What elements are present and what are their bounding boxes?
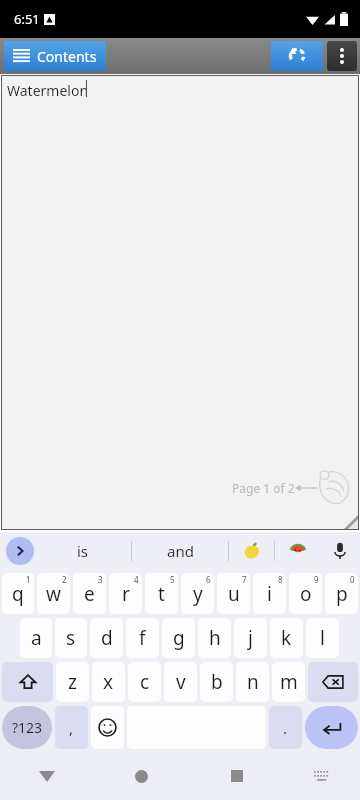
staticText: 4 [134, 574, 139, 585]
button[interactable]: z [56, 662, 89, 702]
button[interactable]: o [289, 573, 322, 614]
staticText: t [158, 581, 165, 607]
staticText: is [77, 541, 89, 561]
staticText: g [173, 625, 185, 651]
staticText: k [281, 625, 292, 651]
staticText: x [103, 669, 114, 695]
staticText: Watermelon [7, 81, 89, 100]
staticText: 6:51 [14, 10, 40, 28]
button[interactable]: j [234, 618, 267, 658]
button[interactable]: , [55, 706, 88, 749]
button[interactable]: f [126, 618, 159, 658]
button[interactable]: c [128, 662, 161, 702]
staticText: d [101, 625, 113, 651]
staticText: n [247, 669, 259, 695]
staticText: . [283, 718, 288, 738]
staticText: r [122, 581, 130, 607]
staticText: z [68, 669, 77, 695]
staticText: 3 [98, 574, 103, 585]
button[interactable]: Enter [305, 706, 358, 749]
staticText: e [84, 581, 95, 607]
staticText: 1 [26, 574, 31, 585]
staticText: 9 [314, 574, 319, 585]
staticText: Page 1 of 2 [232, 480, 295, 496]
button[interactable]: k [270, 618, 303, 658]
staticText: w [46, 581, 61, 607]
button[interactable]: a [20, 618, 52, 658]
button[interactable]: Voice input [320, 532, 360, 570]
staticText: u [228, 581, 240, 607]
staticText: h [209, 625, 221, 651]
button[interactable]: Keyboard switch [284, 752, 360, 800]
staticText: o [300, 581, 312, 607]
button[interactable]: h [198, 618, 231, 658]
button[interactable]: Recents [189, 752, 284, 800]
staticText: 6 [206, 574, 211, 585]
button[interactable]: Refresh [271, 41, 323, 71]
staticText: c [140, 669, 150, 695]
button[interactable]: u [217, 573, 250, 614]
button[interactable]: i [253, 573, 286, 614]
button[interactable]: Shift [2, 662, 53, 702]
button[interactable]: Lemon emoji [229, 532, 274, 570]
button[interactable]: Watermelon [1, 75, 359, 530]
staticText: i [267, 581, 272, 607]
button[interactable]: x [92, 662, 125, 702]
staticText: l [320, 625, 325, 651]
button[interactable]: g [162, 618, 195, 658]
button[interactable]: More options [327, 41, 357, 71]
staticText: b [211, 669, 223, 695]
staticText: 7 [242, 574, 247, 585]
button[interactable]: w [37, 573, 70, 614]
staticText: a [31, 625, 42, 651]
button[interactable]: . [269, 706, 302, 749]
staticText: 2 [62, 574, 67, 585]
staticText: j [248, 625, 253, 651]
staticText: 8 [278, 574, 283, 585]
button[interactable]: and [132, 532, 228, 570]
staticText: 5 [170, 574, 175, 585]
button[interactable]: q [2, 573, 34, 614]
staticText: f [139, 625, 146, 651]
staticText: s [66, 625, 76, 651]
button[interactable]: s [55, 618, 87, 658]
staticText: ?123 [12, 718, 43, 737]
button[interactable]: Home [94, 752, 189, 800]
staticText: v [176, 669, 186, 695]
button[interactable]: Contents [4, 41, 106, 71]
button[interactable]: is [34, 532, 131, 570]
staticText: q [12, 581, 24, 607]
button[interactable]: Expand suggestions [6, 537, 34, 565]
staticText: and [167, 541, 194, 561]
staticText: Contents [37, 47, 97, 66]
button[interactable]: y [181, 573, 214, 614]
staticText: y [193, 581, 203, 607]
button[interactable]: v [164, 662, 197, 702]
button[interactable]: Backspace [308, 662, 358, 702]
button[interactable]: e [73, 573, 106, 614]
button[interactable]: n [236, 662, 269, 702]
button[interactable]: b [200, 662, 233, 702]
button[interactable]: l [306, 618, 339, 658]
button[interactable]: Watermelon emoji [275, 532, 320, 570]
button[interactable]: p [325, 573, 358, 614]
button[interactable]: r [109, 573, 142, 614]
staticText: p [336, 581, 348, 607]
staticText: m [280, 669, 298, 695]
button[interactable]: ?123 [2, 706, 52, 749]
button[interactable]: t [145, 573, 178, 614]
button[interactable]: d [90, 618, 123, 658]
button[interactable]: m [272, 662, 305, 702]
button[interactable]: Back [0, 752, 94, 800]
button[interactable]: Emoji [91, 706, 124, 749]
staticText: 0 [350, 574, 355, 585]
staticText: , [69, 718, 74, 738]
